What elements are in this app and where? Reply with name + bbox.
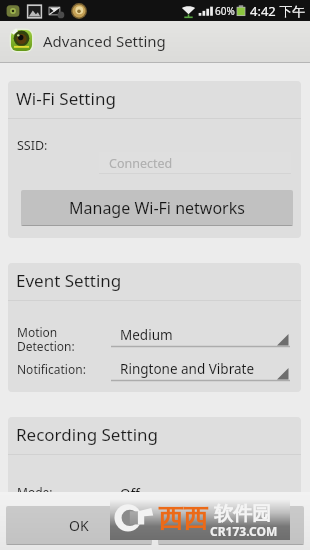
- button[interactable]: OK: [6, 506, 152, 545]
- staticText: Detection:: [17, 338, 75, 354]
- staticText: Motion: [17, 324, 58, 340]
- staticText: Wi-Fi Setting: [16, 87, 116, 110]
- button[interactable]: Off: [111, 481, 290, 492]
- staticText: Ringtone and Vibrate: [120, 360, 255, 378]
- staticText: Manage Wi-Fi networks: [69, 197, 245, 219]
- staticText: 软件园: [214, 502, 271, 526]
- staticText: 4:42 下午: [250, 2, 306, 20]
- staticText: Cancel: [209, 516, 253, 535]
- staticText: Connected: [109, 155, 173, 172]
- button[interactable]: Manage Wi-Fi networks: [21, 190, 293, 226]
- staticText: CR173.COM: [210, 523, 278, 539]
- staticText: Event Setting: [16, 269, 122, 292]
- button[interactable]: Connected: [99, 152, 291, 174]
- staticText: Medium: [120, 326, 173, 344]
- staticText: 60%: [215, 4, 235, 18]
- staticText: Advanced Setting: [43, 31, 166, 51]
- staticText: SSID:: [17, 137, 48, 154]
- staticText: Recording Setting: [16, 423, 159, 446]
- button[interactable]: Cancel: [158, 506, 304, 545]
- staticText: Off: [120, 485, 140, 492]
- staticText: 西西: [158, 503, 208, 534]
- button[interactable]: Ringtone and Vibrate: [111, 356, 290, 382]
- other: App icon: [8, 27, 35, 54]
- staticText: Mode:: [17, 484, 53, 492]
- button[interactable]: Medium: [111, 322, 290, 348]
- staticText: Notification:: [17, 361, 86, 377]
- staticText: OK: [69, 516, 89, 535]
